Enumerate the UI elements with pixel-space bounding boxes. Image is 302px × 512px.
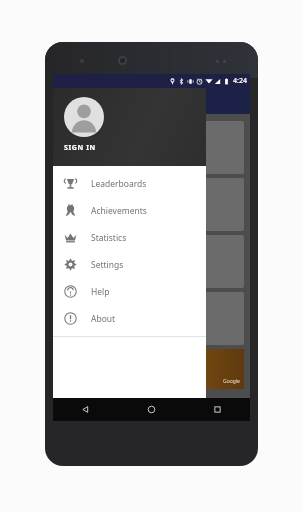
staticText: Leaderboards xyxy=(91,178,147,190)
staticText: Settings xyxy=(91,259,124,271)
button[interactable]: Settings xyxy=(53,251,206,278)
button[interactable]: Achievements xyxy=(53,197,206,224)
button[interactable]: SIGN IN xyxy=(53,88,206,166)
staticText: About xyxy=(91,313,116,325)
staticText: SIGN IN xyxy=(64,143,96,153)
button[interactable]: Leaderboards xyxy=(53,170,206,197)
staticText: Help xyxy=(91,286,110,298)
button[interactable]: Back xyxy=(53,398,118,421)
staticText: Achievements xyxy=(91,205,147,217)
button[interactable]: Home xyxy=(118,398,184,421)
staticText: Google xyxy=(223,378,240,385)
staticText: Statistics xyxy=(91,232,127,244)
staticText: 4:24 xyxy=(233,76,247,86)
button[interactable]: Help xyxy=(53,278,206,305)
button[interactable]: About xyxy=(53,305,206,332)
button[interactable]: Statistics xyxy=(53,224,206,251)
button[interactable]: Recent apps xyxy=(184,398,250,421)
